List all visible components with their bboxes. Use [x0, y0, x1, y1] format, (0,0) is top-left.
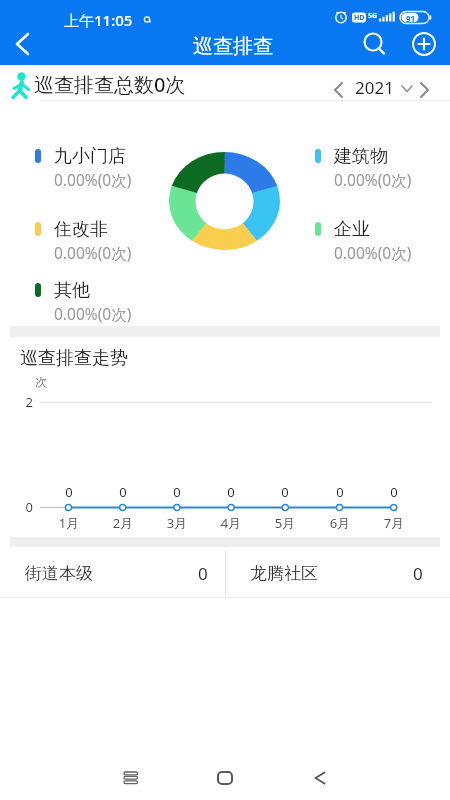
button[interactable] — [414, 65, 440, 100]
staticText: 0.00%(0次) — [54, 169, 132, 190]
staticText: 91 — [406, 13, 416, 24]
staticText: 巡查排查 — [193, 34, 273, 59]
staticText: 2021 — [355, 76, 394, 99]
staticText: 0 — [54, 483, 84, 501]
staticText: 巡查排查走势 — [20, 347, 128, 370]
button[interactable] — [200, 755, 250, 800]
staticText: 4月 — [216, 514, 246, 532]
button[interactable] — [326, 65, 352, 100]
staticText: HD — [354, 13, 365, 23]
staticText: 建筑物 — [334, 145, 388, 168]
staticText: 企业 — [334, 218, 370, 241]
staticText: 巡查排查总数0次 — [34, 71, 186, 98]
staticText: 2月 — [108, 514, 138, 532]
button[interactable] — [352, 28, 398, 65]
button[interactable] — [0, 28, 44, 65]
staticText: 其他 — [54, 279, 90, 302]
staticText: 上午11:05 — [64, 10, 133, 30]
staticText: 3月 — [162, 514, 192, 532]
staticText: 7月 — [379, 514, 409, 532]
staticText: 5月 — [270, 514, 300, 532]
button[interactable] — [400, 28, 446, 65]
staticText: 5G — [368, 11, 378, 21]
staticText: 0 — [198, 562, 208, 585]
button[interactable] — [295, 755, 345, 800]
staticText: 0 — [379, 483, 409, 501]
staticText: 次 — [35, 374, 47, 389]
button[interactable]: 街道本级 — [0, 547, 225, 598]
staticText: 0 — [325, 483, 355, 501]
staticText: 6月 — [325, 514, 355, 532]
staticText: 0 — [270, 483, 300, 501]
staticText: 龙腾社区 — [250, 563, 318, 584]
staticText: 0.00%(0次) — [54, 303, 132, 324]
staticText: 2 — [13, 393, 33, 411]
button[interactable]: 龙腾社区 — [226, 547, 450, 598]
staticText: 0 — [13, 498, 33, 516]
staticText: 住改非 — [54, 218, 108, 241]
staticText: 0.00%(0次) — [54, 242, 132, 263]
button[interactable]: 2021 — [352, 65, 414, 100]
staticText: 九小门店 — [54, 145, 126, 168]
staticText: 0 — [413, 562, 423, 585]
staticText: 0 — [108, 483, 138, 501]
staticText: 0.00%(0次) — [334, 242, 412, 263]
staticText: 0.00%(0次) — [334, 169, 412, 190]
staticText: 1月 — [54, 514, 84, 532]
staticText: 街道本级 — [25, 563, 93, 584]
button[interactable] — [106, 755, 156, 800]
staticText: 0 — [216, 483, 246, 501]
staticText: 0 — [162, 483, 192, 501]
